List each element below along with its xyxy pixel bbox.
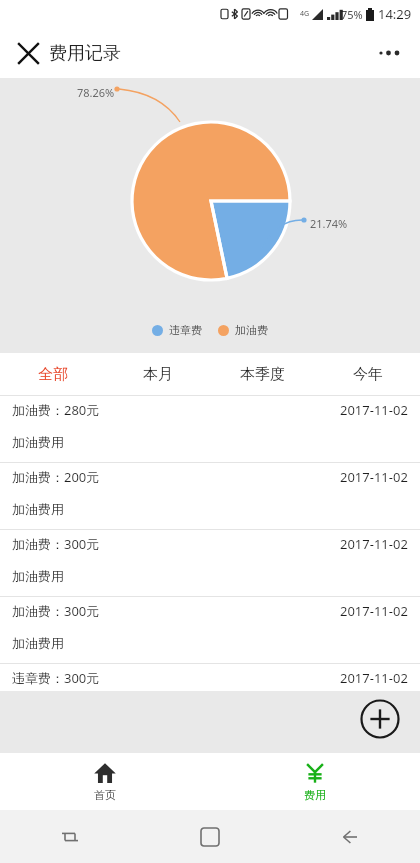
staticText: 14:29: [378, 5, 412, 23]
button[interactable]: Close: [10, 35, 46, 71]
staticText: 75%: [341, 7, 363, 22]
button[interactable]: 加油费：300元: [0, 530, 420, 596]
button[interactable]: 费用: [210, 753, 420, 810]
staticText: 21.74%: [310, 216, 348, 231]
staticText: 加油费：300元: [12, 535, 100, 553]
staticText: 费用: [304, 788, 326, 802]
button[interactable]: 全部: [0, 353, 105, 395]
button[interactable]: 违章费：300元: [0, 664, 420, 691]
staticText: 加油费：280元: [12, 401, 100, 419]
staticText: 加油费用: [12, 635, 64, 651]
staticText: 2017-11-02: [340, 535, 408, 553]
staticText: 2017-11-02: [340, 468, 408, 486]
staticText: 加油费: [235, 323, 268, 337]
staticText: 加油费用: [12, 434, 64, 450]
staticText: 2017-11-02: [340, 669, 408, 687]
button[interactable]: 加油费：200元: [0, 463, 420, 529]
staticText: 今年: [353, 365, 383, 384]
button[interactable]: More options: [370, 33, 410, 73]
staticText: 2017-11-02: [340, 602, 408, 620]
button[interactable]: 本月: [105, 353, 210, 395]
staticText: 全部: [38, 365, 68, 384]
staticText: 违章费：300元: [12, 669, 100, 687]
staticText: 加油费用: [12, 568, 64, 584]
button[interactable]: Back: [280, 810, 420, 863]
button[interactable]: Recents: [0, 810, 140, 863]
staticText: 加油费：300元: [12, 602, 100, 620]
staticText: 本月: [143, 365, 173, 384]
staticText: 首页: [94, 788, 116, 802]
staticText: 费用记录: [49, 42, 121, 65]
staticText: 加油费：200元: [12, 468, 100, 486]
button[interactable]: 加油费：280元: [0, 396, 420, 462]
staticText: 4G: [300, 9, 310, 19]
staticText: 违章费: [169, 323, 202, 337]
button[interactable]: Home: [140, 810, 280, 863]
button[interactable]: 首页: [0, 753, 210, 810]
button[interactable]: Add expense: [360, 699, 400, 739]
button[interactable]: 今年: [315, 353, 420, 395]
button[interactable]: 本季度: [210, 353, 315, 395]
button[interactable]: 加油费：300元: [0, 597, 420, 663]
staticText: 2017-11-02: [340, 401, 408, 419]
staticText: 78.26%: [77, 85, 115, 100]
staticText: 加油费用: [12, 501, 64, 517]
staticText: 本季度: [240, 365, 285, 384]
